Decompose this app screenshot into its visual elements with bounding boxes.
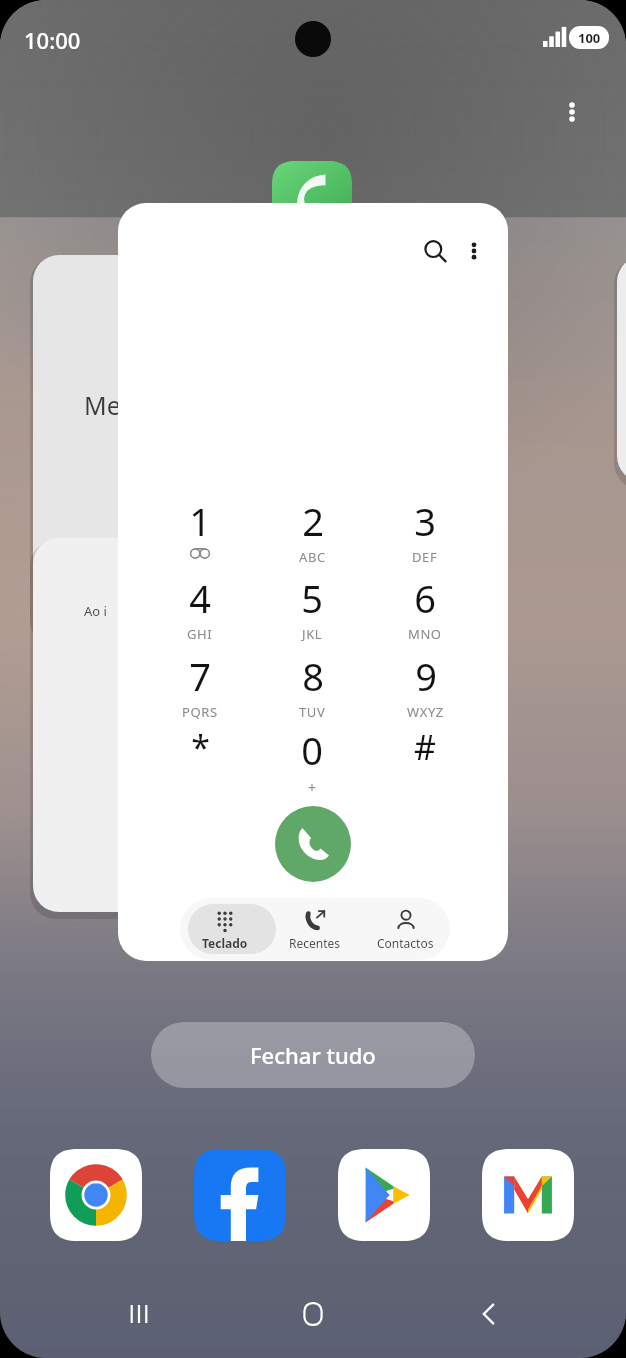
staticText: 2 [302, 495, 324, 547]
staticText: 6 [414, 572, 436, 624]
staticText: Recentes [289, 935, 341, 951]
button[interactable]: Teclado [180, 898, 270, 960]
button[interactable]: 5 [266, 572, 358, 644]
button[interactable]: Home [282, 1283, 344, 1345]
staticText: 9 [415, 650, 437, 702]
button[interactable]: Facebook [194, 1149, 286, 1241]
button[interactable]: 6 [379, 572, 471, 644]
staticText: 8 [302, 650, 324, 702]
staticText: DEF [412, 548, 438, 566]
staticText: Me [84, 388, 121, 422]
button[interactable]: * [154, 724, 246, 796]
button[interactable]: 3 [379, 495, 471, 567]
staticText: * [191, 724, 210, 770]
staticText: MNO [408, 625, 442, 643]
staticText: Ao i [84, 602, 107, 620]
staticText: Contactos [377, 935, 434, 951]
staticText: 0 [301, 724, 323, 776]
staticText: + [308, 778, 317, 796]
button[interactable]: Fechar tudo [151, 1022, 475, 1088]
button[interactable]: 8 [266, 650, 358, 722]
button[interactable]: Recents [108, 1283, 170, 1345]
button[interactable]: 2 [266, 495, 358, 567]
staticText: 7 [189, 650, 211, 702]
button[interactable]: Search [118, 203, 508, 961]
staticText: Teclado [202, 935, 248, 951]
staticText: ABC [299, 548, 326, 566]
staticText: # [414, 724, 436, 770]
staticText: 4 [189, 572, 211, 624]
staticText: Fechar tudo [250, 1040, 376, 1070]
button[interactable]: 1 [154, 495, 246, 567]
button[interactable]: Play Store [338, 1149, 430, 1241]
staticText: 100 [578, 29, 601, 47]
button[interactable]: Phone app [272, 161, 352, 241]
button[interactable]: Chrome [50, 1149, 142, 1241]
button[interactable]: Search [413, 229, 457, 273]
staticText: WXYZ [407, 703, 444, 721]
staticText: 3 [414, 495, 436, 547]
button[interactable]: Gmail [482, 1149, 574, 1241]
button[interactable]: 4 [154, 572, 246, 644]
staticText: 5 [301, 572, 323, 624]
staticText: 10:00 [24, 25, 81, 55]
button[interactable]: Contactos [360, 898, 450, 960]
button[interactable]: # [379, 724, 471, 796]
staticText: 1 [189, 495, 211, 547]
button[interactable]: More options [550, 90, 594, 134]
button[interactable]: 7 [154, 650, 246, 722]
button[interactable]: Call [275, 806, 351, 882]
button[interactable]: Recentes [270, 898, 360, 960]
staticText: GHI [187, 625, 213, 643]
staticText: TUV [299, 703, 326, 721]
staticText: PQRS [182, 703, 218, 721]
staticText: JKL [302, 625, 323, 643]
button[interactable]: 9 [379, 650, 471, 722]
button[interactable]: More options [452, 229, 496, 273]
button[interactable]: 0 [266, 724, 358, 796]
button[interactable]: Back [458, 1283, 520, 1345]
